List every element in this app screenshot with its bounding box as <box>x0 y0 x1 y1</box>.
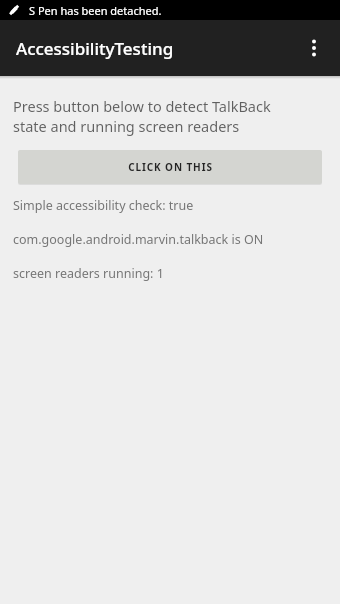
staticText: CLICK ON THIS <box>128 160 213 174</box>
staticText: S Pen has been detached. <box>29 3 162 18</box>
staticText: AccessibilityTesting <box>16 37 174 60</box>
button[interactable]: More options <box>294 28 334 68</box>
staticText: screen readers running: 1 <box>13 265 164 282</box>
staticText: com.google.android.marvin.talkback is ON <box>13 231 264 248</box>
staticText: Press button below to detect TalkBack st… <box>13 96 271 136</box>
staticText: Simple accessibility check: true <box>13 197 194 214</box>
other: S Pen <box>7 3 21 17</box>
button[interactable]: CLICK ON THIS <box>18 150 322 184</box>
